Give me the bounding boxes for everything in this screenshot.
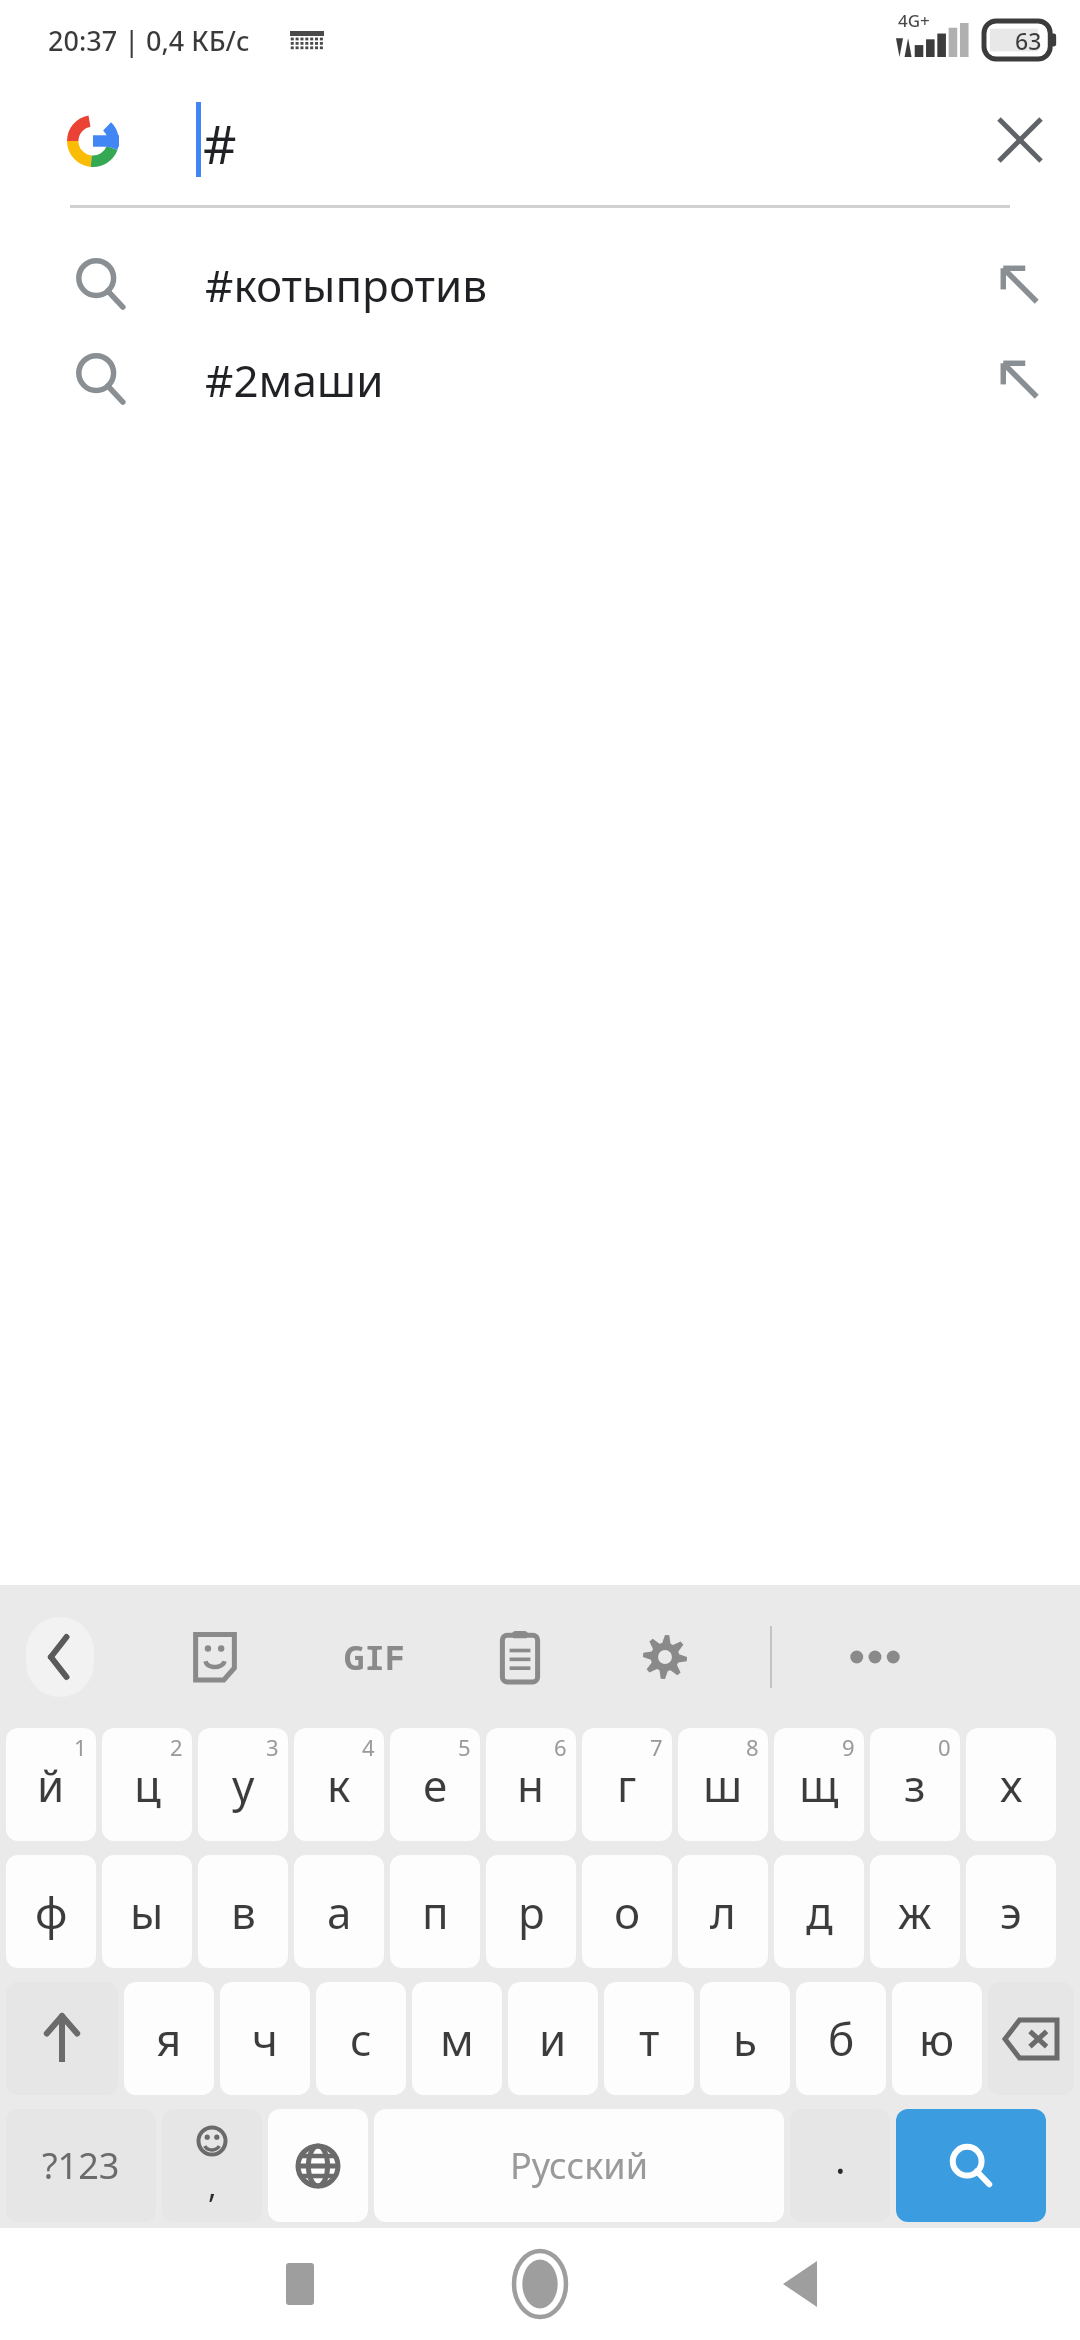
staticText: а bbox=[327, 1882, 352, 1942]
button[interactable]: ж bbox=[870, 1855, 960, 1968]
button[interactable]: GIF bbox=[344, 1634, 406, 1680]
staticText: 8 bbox=[746, 1732, 759, 1762]
staticText: Русский bbox=[510, 2141, 648, 2190]
button[interactable]: Back bbox=[26, 1617, 94, 1697]
button[interactable]: в bbox=[198, 1855, 288, 1968]
staticText: с bbox=[350, 2009, 372, 2069]
button[interactable]: Settings bbox=[625, 1617, 705, 1697]
staticText: з bbox=[904, 1755, 926, 1815]
button[interactable]: ш bbox=[678, 1728, 768, 1841]
button[interactable]: Русский bbox=[374, 2109, 784, 2222]
staticText: ф bbox=[35, 1882, 68, 1942]
button[interactable]: л bbox=[678, 1855, 768, 1968]
staticText: #котыпротив bbox=[205, 255, 488, 315]
button[interactable]: т bbox=[604, 1982, 694, 2095]
staticText: 2 bbox=[170, 1732, 183, 1762]
button[interactable]: р bbox=[486, 1855, 576, 1968]
button[interactable]: г bbox=[582, 1728, 672, 1841]
button[interactable]: х bbox=[966, 1728, 1056, 1841]
button[interactable]: е bbox=[390, 1728, 480, 1841]
button[interactable]: й bbox=[6, 1728, 96, 1841]
button[interactable]: ч bbox=[220, 1982, 310, 2095]
staticText: р bbox=[518, 1882, 545, 1942]
staticText: 5 bbox=[458, 1732, 471, 1762]
button[interactable]: у bbox=[198, 1728, 288, 1841]
staticText: м bbox=[440, 2009, 474, 2069]
button[interactable]: Shift bbox=[6, 1982, 118, 2095]
button[interactable]: п bbox=[390, 1855, 480, 1968]
staticText: 4 bbox=[362, 1732, 375, 1762]
button[interactable]: Back bbox=[755, 2239, 845, 2329]
button[interactable]: Home bbox=[490, 2234, 590, 2334]
button[interactable]: #котыпротив bbox=[0, 237, 1080, 332]
staticText: т bbox=[639, 2009, 660, 2069]
button[interactable]: Emoji bbox=[162, 2109, 262, 2222]
button[interactable]: м bbox=[412, 1982, 502, 2095]
staticText: ?123 bbox=[42, 2141, 120, 2190]
button[interactable]: ф bbox=[6, 1855, 96, 1968]
staticText: о bbox=[614, 1882, 641, 1942]
staticText: ы bbox=[130, 1882, 164, 1942]
staticText: 9 bbox=[842, 1732, 855, 1762]
staticText: 1 bbox=[74, 1732, 87, 1762]
button[interactable]: ц bbox=[102, 1728, 192, 1841]
staticText: д bbox=[806, 1882, 833, 1942]
button[interactable]: Backspace bbox=[988, 1982, 1074, 2095]
button[interactable]: н bbox=[486, 1728, 576, 1841]
staticText: б bbox=[828, 2009, 855, 2069]
staticText: г bbox=[617, 1755, 637, 1815]
button[interactable]: б bbox=[796, 1982, 886, 2095]
staticText: 7 bbox=[650, 1732, 663, 1762]
staticText: ж bbox=[898, 1882, 932, 1942]
button[interactable]: Search bbox=[896, 2109, 1046, 2222]
button[interactable]: и bbox=[508, 1982, 598, 2095]
button[interactable]: Clear bbox=[982, 102, 1058, 178]
button[interactable]: с bbox=[316, 1982, 406, 2095]
staticText: ь bbox=[733, 2009, 757, 2069]
button[interactable]: ы bbox=[102, 1855, 192, 1968]
button[interactable]: щ bbox=[774, 1728, 864, 1841]
staticText: х bbox=[1000, 1755, 1023, 1815]
button[interactable]: ?123 bbox=[6, 2109, 156, 2222]
button[interactable]: Change language bbox=[268, 2109, 368, 2222]
staticText: л bbox=[710, 1882, 736, 1942]
staticText: , bbox=[208, 2164, 217, 2208]
staticText: #2маши bbox=[205, 350, 384, 410]
staticText: ю bbox=[919, 2009, 955, 2069]
button[interactable]: More bbox=[830, 1612, 920, 1702]
staticText: в bbox=[231, 1882, 256, 1942]
staticText: я bbox=[156, 2009, 182, 2069]
other: Google bbox=[67, 115, 119, 167]
staticText: 0 bbox=[938, 1732, 951, 1762]
staticText: щ bbox=[799, 1755, 839, 1815]
staticText: . bbox=[835, 2131, 846, 2185]
staticText: к bbox=[327, 1755, 351, 1815]
staticText: п bbox=[422, 1882, 449, 1942]
button[interactable]: я bbox=[124, 1982, 214, 2095]
button[interactable]: Insert suggestion bbox=[982, 342, 1058, 418]
staticText: ч bbox=[252, 2009, 278, 2069]
staticText: # bbox=[203, 108, 237, 179]
button[interactable]: о bbox=[582, 1855, 672, 1968]
staticText: е bbox=[423, 1755, 448, 1815]
staticText: н bbox=[517, 1755, 545, 1815]
button[interactable]: Insert suggestion bbox=[982, 247, 1058, 323]
staticText: 6 bbox=[554, 1732, 567, 1762]
button[interactable]: ю bbox=[892, 1982, 982, 2095]
button[interactable]: #2маши bbox=[0, 332, 1080, 427]
button[interactable]: Recents bbox=[255, 2239, 345, 2329]
staticText: 20:37 | 0,4 КБ/с bbox=[48, 22, 250, 59]
button[interactable]: к bbox=[294, 1728, 384, 1841]
button[interactable]: Stickers bbox=[175, 1617, 255, 1697]
staticText: 3 bbox=[266, 1732, 279, 1762]
button[interactable]: Clipboard bbox=[480, 1617, 560, 1697]
button[interactable]: ь bbox=[700, 1982, 790, 2095]
button[interactable]: д bbox=[774, 1855, 864, 1968]
button[interactable]: Period bbox=[790, 2109, 890, 2222]
staticText: и bbox=[539, 2009, 567, 2069]
staticText: ц bbox=[134, 1755, 161, 1815]
staticText: 63 bbox=[1015, 25, 1042, 56]
button[interactable]: э bbox=[966, 1855, 1056, 1968]
button[interactable]: з bbox=[870, 1728, 960, 1841]
button[interactable]: а bbox=[294, 1855, 384, 1968]
